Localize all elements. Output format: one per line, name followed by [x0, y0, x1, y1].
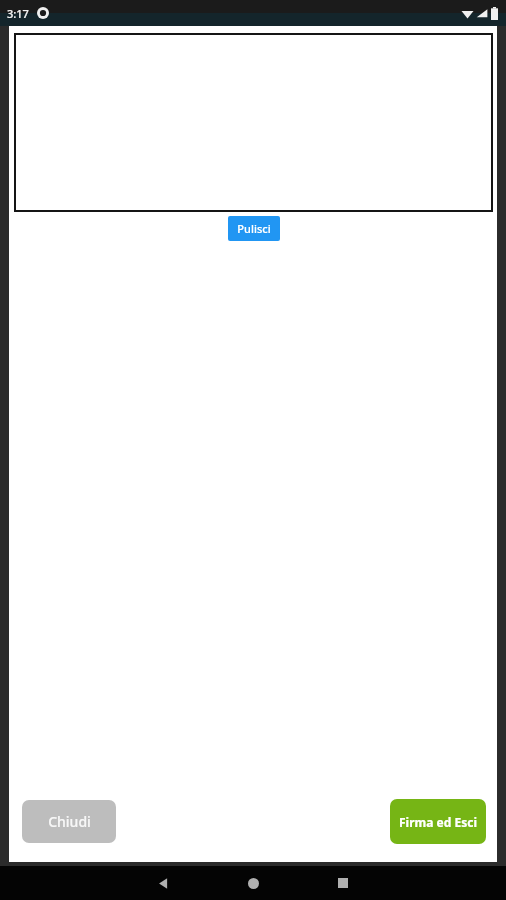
staticText: 3:17 [7, 6, 29, 21]
staticText: Pulisci [237, 221, 271, 236]
button[interactable]: Area firma [14, 33, 493, 212]
button[interactable]: Chiudi [22, 800, 116, 843]
button[interactable]: Pulisci [228, 216, 280, 241]
button[interactable]: Recent apps [323, 866, 363, 900]
staticText: Firma ed Esci [399, 814, 477, 830]
button[interactable]: Firma ed Esci [390, 799, 486, 844]
button[interactable]: Back [143, 866, 183, 900]
staticText: Chiudi [48, 812, 91, 831]
button[interactable]: Home [233, 866, 273, 900]
